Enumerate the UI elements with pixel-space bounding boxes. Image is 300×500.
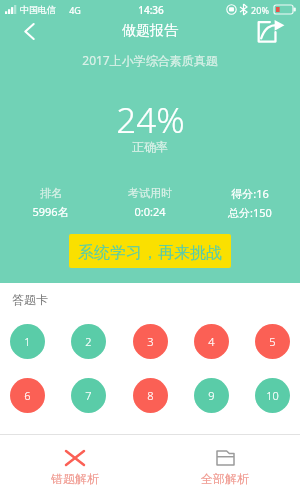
staticText: 1 [24,334,31,349]
button[interactable]: 5 [255,324,290,359]
button[interactable]: 6 [10,378,45,413]
button[interactable]: 1 [10,324,45,359]
button[interactable]: 错题解析 [0,435,150,500]
staticText: 排名 [40,186,62,200]
button[interactable]: 7 [71,378,106,413]
staticText: 6 [24,388,31,403]
staticText: 系统学习，再来挑战 [78,243,222,263]
button[interactable]: 2 [71,324,106,359]
staticText: 8 [147,388,154,403]
staticText: 答题卡 [12,292,48,307]
staticText: 得分:16 [231,186,269,201]
staticText: 做题报告 [122,22,178,40]
button[interactable]: 4 [194,324,229,359]
staticText: 正确率 [132,139,168,154]
staticText: 20% [251,4,269,16]
button[interactable]: Back [0,17,50,45]
staticText: 考试用时 [128,186,172,200]
button[interactable]: 系统学习，再来挑战 [69,234,231,268]
staticText: 全部解析 [201,471,249,486]
staticText: 24% [116,96,185,144]
button[interactable]: 10 [255,378,290,413]
staticText: 7 [85,388,92,403]
staticText: 总分:150 [228,205,272,220]
staticText: 5996名 [32,204,69,219]
staticText: 错题解析 [51,471,99,486]
staticText: 0:0:24 [134,204,166,219]
staticText: 9 [208,388,215,403]
staticText: 10 [266,388,279,403]
staticText: 3 [147,334,154,349]
staticText: 5 [269,334,276,349]
button[interactable]: Share [256,17,300,45]
staticText: 2 [85,334,92,349]
button[interactable]: 9 [194,378,229,413]
staticText: 中国电信 [20,4,56,15]
staticText: 14:36 [138,3,164,17]
staticText: 4 [208,334,215,349]
staticText: 2017上小学综合素质真题 [82,52,218,68]
button[interactable]: 全部解析 [150,435,300,500]
button[interactable]: 8 [133,378,168,413]
staticText: 4G [69,4,81,16]
button[interactable]: 3 [133,324,168,359]
